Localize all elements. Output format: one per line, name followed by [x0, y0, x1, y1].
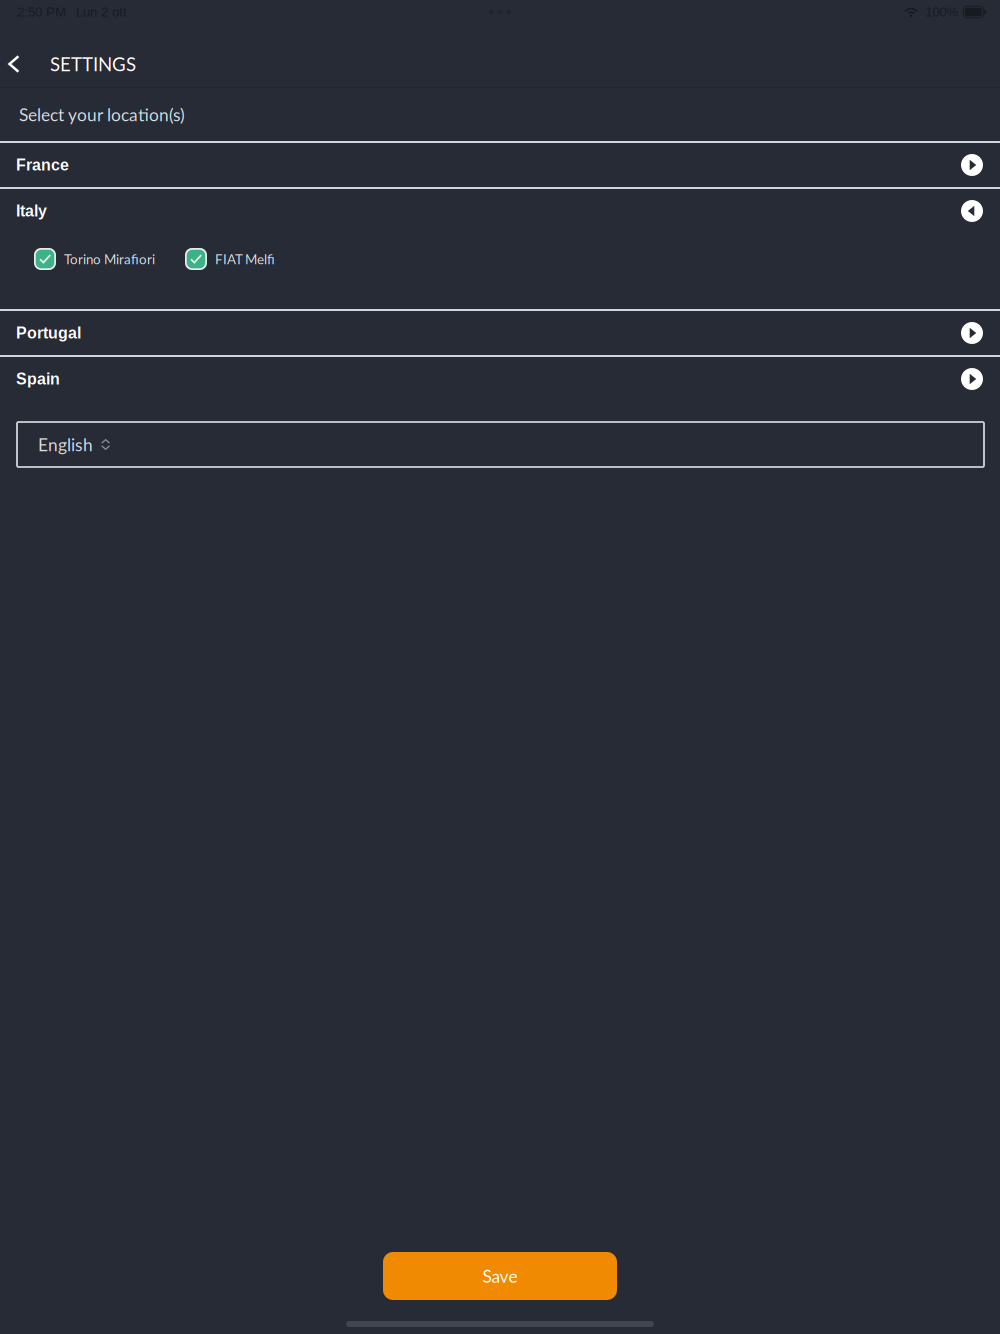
staticText: Italy: [16, 202, 47, 220]
staticText: FIAT Melfi: [215, 251, 275, 267]
staticText: Torino Mirafiori: [64, 251, 155, 267]
button[interactable]: Save: [383, 1252, 617, 1300]
staticText: Save: [482, 1266, 517, 1286]
staticText: Portugal: [16, 324, 81, 342]
staticText: Spain: [16, 370, 60, 388]
button[interactable]: English: [17, 422, 984, 467]
staticText: 2:50 PM: [17, 5, 66, 19]
button[interactable]: France: [0, 143, 1000, 187]
button[interactable]: Torino Mirafiori: [34, 248, 155, 270]
button[interactable]: FIAT Melfi: [185, 248, 275, 270]
button[interactable]: Italy: [0, 189, 1000, 233]
staticText: 100%: [925, 5, 958, 19]
button[interactable]: Spain: [0, 357, 1000, 401]
staticText: Lun 2 ott: [76, 5, 127, 19]
staticText: SETTINGS: [50, 53, 136, 75]
button[interactable]: Portugal: [0, 311, 1000, 355]
staticText: France: [16, 156, 69, 174]
staticText: English: [38, 434, 93, 455]
button[interactable]: Back: [2, 42, 26, 86]
staticText: Select your location(s): [19, 104, 185, 125]
